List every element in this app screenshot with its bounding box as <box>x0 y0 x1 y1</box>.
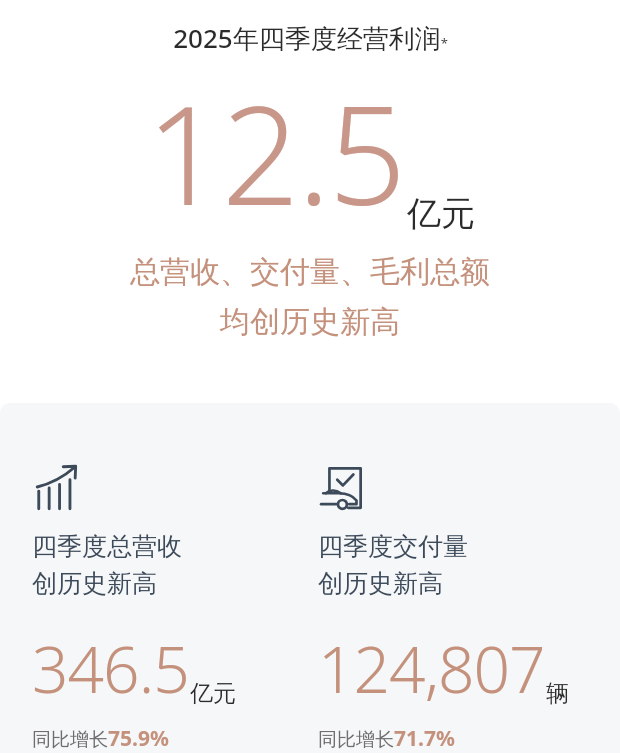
staticText: 124,807 <box>318 625 545 712</box>
staticText: 亿元 <box>407 192 475 235</box>
staticText: 同比增长71.7% <box>318 724 455 753</box>
staticText: 12.5 <box>146 60 405 245</box>
staticText: 四季度交付量 <box>318 531 468 562</box>
staticText: 2025年四季度经营利润* <box>173 20 448 56</box>
staticText: 四季度总营收 <box>32 531 182 562</box>
button[interactable]: Revenue growth chart <box>32 403 310 753</box>
staticText: 创历史新高 <box>32 568 157 599</box>
staticText: 总营收、交付量、毛利总额 <box>130 253 490 291</box>
staticText: 亿元 <box>190 679 236 708</box>
staticText: 辆 <box>546 679 569 708</box>
button[interactable]: Vehicle deliveries <box>318 403 620 753</box>
staticText: 346.5 <box>32 625 189 712</box>
other: Vehicle deliveries <box>318 461 370 513</box>
other: Revenue growth chart <box>32 461 84 513</box>
staticText: 同比增长75.9% <box>32 724 169 753</box>
staticText: 创历史新高 <box>318 568 443 599</box>
staticText: 均创历史新高 <box>220 303 400 341</box>
